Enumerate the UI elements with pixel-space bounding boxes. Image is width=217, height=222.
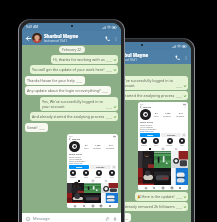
staticText: Digital creator <box>140 124 153 126</box>
staticText: Message <box>167 134 176 137</box>
button[interactable]: Call <box>103 34 112 43</box>
staticText: I've already removed 2k followers <box>117 204 175 209</box>
button[interactable]: More options <box>112 35 119 42</box>
button[interactable] <box>153 138 159 144</box>
button[interactable]: Photo <box>138 168 154 185</box>
button[interactable]: Yes, We've successfully logged in to you… <box>40 97 118 111</box>
button[interactable]: Great! <box>25 123 48 132</box>
button[interactable]: Photo <box>138 151 154 168</box>
staticText: 312 <box>109 144 113 147</box>
staticText: Any update about the login on everything… <box>27 88 101 93</box>
button[interactable]: Photo <box>67 183 84 193</box>
staticText: And already started the analysing proces… <box>32 114 105 119</box>
staticText: Sharbul Mayne <box>44 33 79 39</box>
button[interactable]: Back <box>24 34 32 42</box>
button[interactable]: 🎉Here is the update! <box>135 192 188 201</box>
staticText: And already started the analysing proces… <box>102 93 175 98</box>
staticText: 10:41 <box>176 85 183 88</box>
staticText: 10:41 <box>102 90 109 93</box>
staticText: ▮▮▮ <box>113 135 116 137</box>
button[interactable]: Call <box>173 53 182 62</box>
button[interactable]: 9:41 <box>67 134 118 208</box>
staticText: Hi, thanks for working with us <box>53 57 105 62</box>
button[interactable]: More <box>182 133 186 137</box>
staticText: Thanks Hasan for your help <box>27 78 75 83</box>
button[interactable] <box>70 170 76 176</box>
button[interactable]: Follow <box>140 133 160 137</box>
staticText: Posts <box>154 115 159 117</box>
button[interactable]: Photo <box>154 168 171 185</box>
staticText: 10:41 <box>106 106 113 109</box>
button[interactable] <box>141 138 147 144</box>
button[interactable]: Photo <box>67 193 84 203</box>
button[interactable]: Yes, We've successfully logged in to you… <box>110 76 188 90</box>
staticText: UI/UX Designer <box>69 158 83 160</box>
button[interactable]: More <box>112 165 116 169</box>
button[interactable]: Photo <box>101 183 118 193</box>
button[interactable]: Nice updated <box>95 213 131 222</box>
button[interactable]: More options <box>182 54 189 61</box>
staticText: Follow <box>147 134 154 137</box>
staticText: Saikat Hasan <box>140 121 153 124</box>
button[interactable]: And already started the analysing proces… <box>30 112 118 121</box>
staticText: 9:41 AM <box>96 44 109 48</box>
staticText: 64 <box>85 144 88 147</box>
button[interactable]: Any update about the login on everything… <box>25 86 111 95</box>
staticText: 10:41 <box>122 217 129 220</box>
staticText: February 22 <box>62 47 82 52</box>
button[interactable]: Message <box>161 133 181 137</box>
button[interactable] <box>167 138 173 144</box>
staticText: last seen at 10:41 <box>114 58 137 62</box>
button[interactable]: Hi, thanks for working with us <box>51 55 118 64</box>
button[interactable]: Photo <box>101 193 118 203</box>
staticText: You will get the update of your work her… <box>32 67 105 72</box>
button[interactable]: Follow <box>69 165 89 169</box>
staticText: Dhaka, Bangladesh <box>69 160 86 162</box>
staticText: Nice updated <box>97 215 121 220</box>
button[interactable]: Photo <box>84 183 101 193</box>
staticText: Message <box>96 166 105 169</box>
button[interactable]: Photo <box>154 151 171 168</box>
button[interactable]: Message <box>90 165 111 169</box>
button[interactable]: Attach <box>104 216 110 222</box>
staticText: 10:41 <box>39 127 46 130</box>
button[interactable]: Photo <box>171 151 188 168</box>
staticText: 312 <box>179 112 183 115</box>
button[interactable]: 9:41 <box>138 102 188 190</box>
button[interactable] <box>83 170 89 176</box>
staticText: Food <box>110 176 114 178</box>
button[interactable]: Photo <box>171 168 188 185</box>
staticText: Lifestyle <box>70 176 76 178</box>
staticText: 1,250 <box>95 144 101 147</box>
staticText: Following <box>106 147 115 149</box>
button[interactable]: You will get the update of your work her… <box>30 65 118 74</box>
button[interactable] <box>179 138 185 144</box>
button[interactable] <box>96 170 102 176</box>
staticText: Digital creator <box>69 156 82 158</box>
staticText: 1,250 <box>165 112 171 115</box>
staticText: 10:41 <box>106 116 113 119</box>
staticText: Message <box>33 216 50 221</box>
button[interactable]: I've already removed 2k followers <box>115 202 188 211</box>
staticText: 64 <box>155 112 158 115</box>
staticText: 9:41 AM <box>26 25 39 29</box>
staticText: Work <box>154 144 158 146</box>
button[interactable] <box>109 170 115 176</box>
button[interactable]: Back <box>94 53 102 61</box>
button[interactable]: Voice message <box>112 216 118 222</box>
staticText: Sharbul Mayne <box>114 52 149 58</box>
button[interactable]: Thanks Hasan for your help <box>25 76 85 85</box>
staticText: Yes, We've successfully logged in to you… <box>112 78 175 88</box>
staticText: Great! <box>27 125 38 130</box>
staticText: Follow <box>76 166 83 169</box>
staticText: last seen at 10:41 <box>44 39 67 43</box>
staticText: 10:41 <box>176 95 183 98</box>
button[interactable]: Photo <box>84 193 101 203</box>
button[interactable]: And already started the analysing proces… <box>100 91 188 100</box>
staticText: 10:41 <box>176 196 183 199</box>
button[interactable]: Emoji <box>25 216 31 222</box>
staticText: 10:41 <box>176 206 183 209</box>
staticText: ▮▮▮ <box>183 103 186 105</box>
staticText: 🎉Here is the update! <box>137 194 175 199</box>
staticText: www.saikat.com <box>69 162 83 164</box>
